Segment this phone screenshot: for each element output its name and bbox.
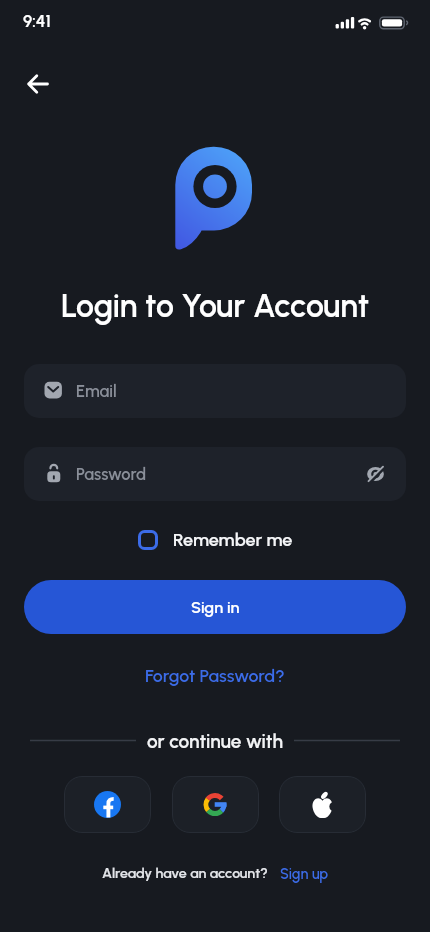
button[interactable] [16, 62, 62, 106]
staticText: Email [76, 381, 117, 401]
staticText: Remember me [173, 529, 293, 551]
button[interactable] [279, 776, 366, 833]
staticText: Sign up [280, 865, 329, 882]
staticText: Already have an account? [102, 865, 268, 882]
button[interactable] [172, 776, 259, 833]
staticText: Forgot Password? [145, 665, 285, 686]
button[interactable] [24, 364, 406, 418]
button[interactable]: Remember me [138, 529, 293, 551]
staticText: or continue with [147, 730, 284, 753]
staticText: 9:41 [23, 11, 51, 31]
button[interactable]: Forgot Password? [145, 665, 285, 686]
button[interactable] [64, 776, 151, 833]
button[interactable] [24, 447, 406, 501]
staticText: Password [76, 464, 147, 484]
button[interactable]: Sign in [24, 580, 406, 634]
staticText: Sign in [191, 598, 240, 617]
button[interactable]: Sign up [280, 865, 329, 882]
staticText: Login to Your Account [61, 287, 370, 325]
